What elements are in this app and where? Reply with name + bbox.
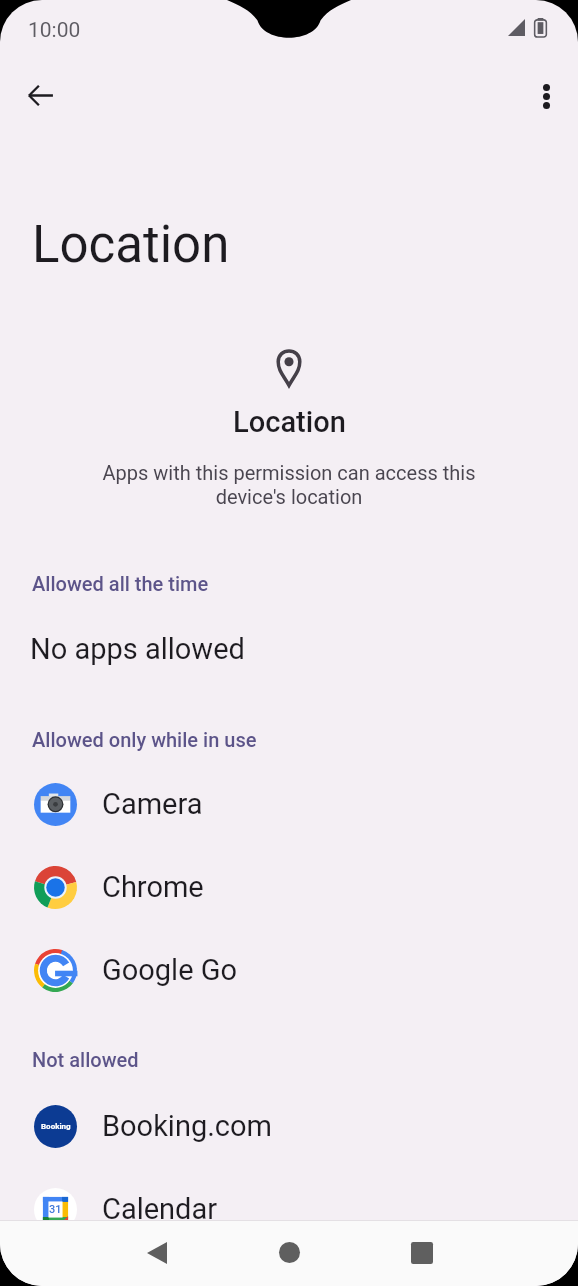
button[interactable]: Navigate up	[16, 71, 64, 119]
button[interactable]: Chrome	[0, 865, 578, 909]
staticText: Allowed only while in use	[32, 728, 257, 751]
staticText: Not allowed	[32, 1048, 139, 1071]
staticText: 31	[49, 1203, 62, 1216]
staticText: Google Go	[102, 953, 238, 987]
button[interactable]: Booking	[0, 1104, 578, 1148]
staticText: Location	[32, 215, 230, 275]
staticText: Chrome	[102, 870, 204, 904]
button[interactable]: Back	[128, 1224, 185, 1281]
staticText: No apps allowed	[30, 632, 245, 666]
staticText: Booking.com	[102, 1109, 272, 1143]
button[interactable]: 31	[0, 1187, 578, 1231]
staticText: Allowed all the time	[32, 572, 209, 595]
staticText: Apps with this permission can access thi…	[89, 461, 489, 509]
staticText: Calendar	[102, 1192, 218, 1226]
staticText: 10:00	[28, 18, 81, 43]
button[interactable]: Home	[261, 1224, 318, 1281]
button[interactable]: Camera	[0, 782, 578, 826]
staticText: Booking	[41, 1122, 71, 1131]
button[interactable]: More options	[522, 72, 570, 120]
staticText: Camera	[102, 787, 203, 821]
button[interactable]: Recent apps	[393, 1224, 450, 1281]
staticText: Location	[233, 405, 346, 439]
button[interactable]: Google Go	[0, 948, 578, 992]
